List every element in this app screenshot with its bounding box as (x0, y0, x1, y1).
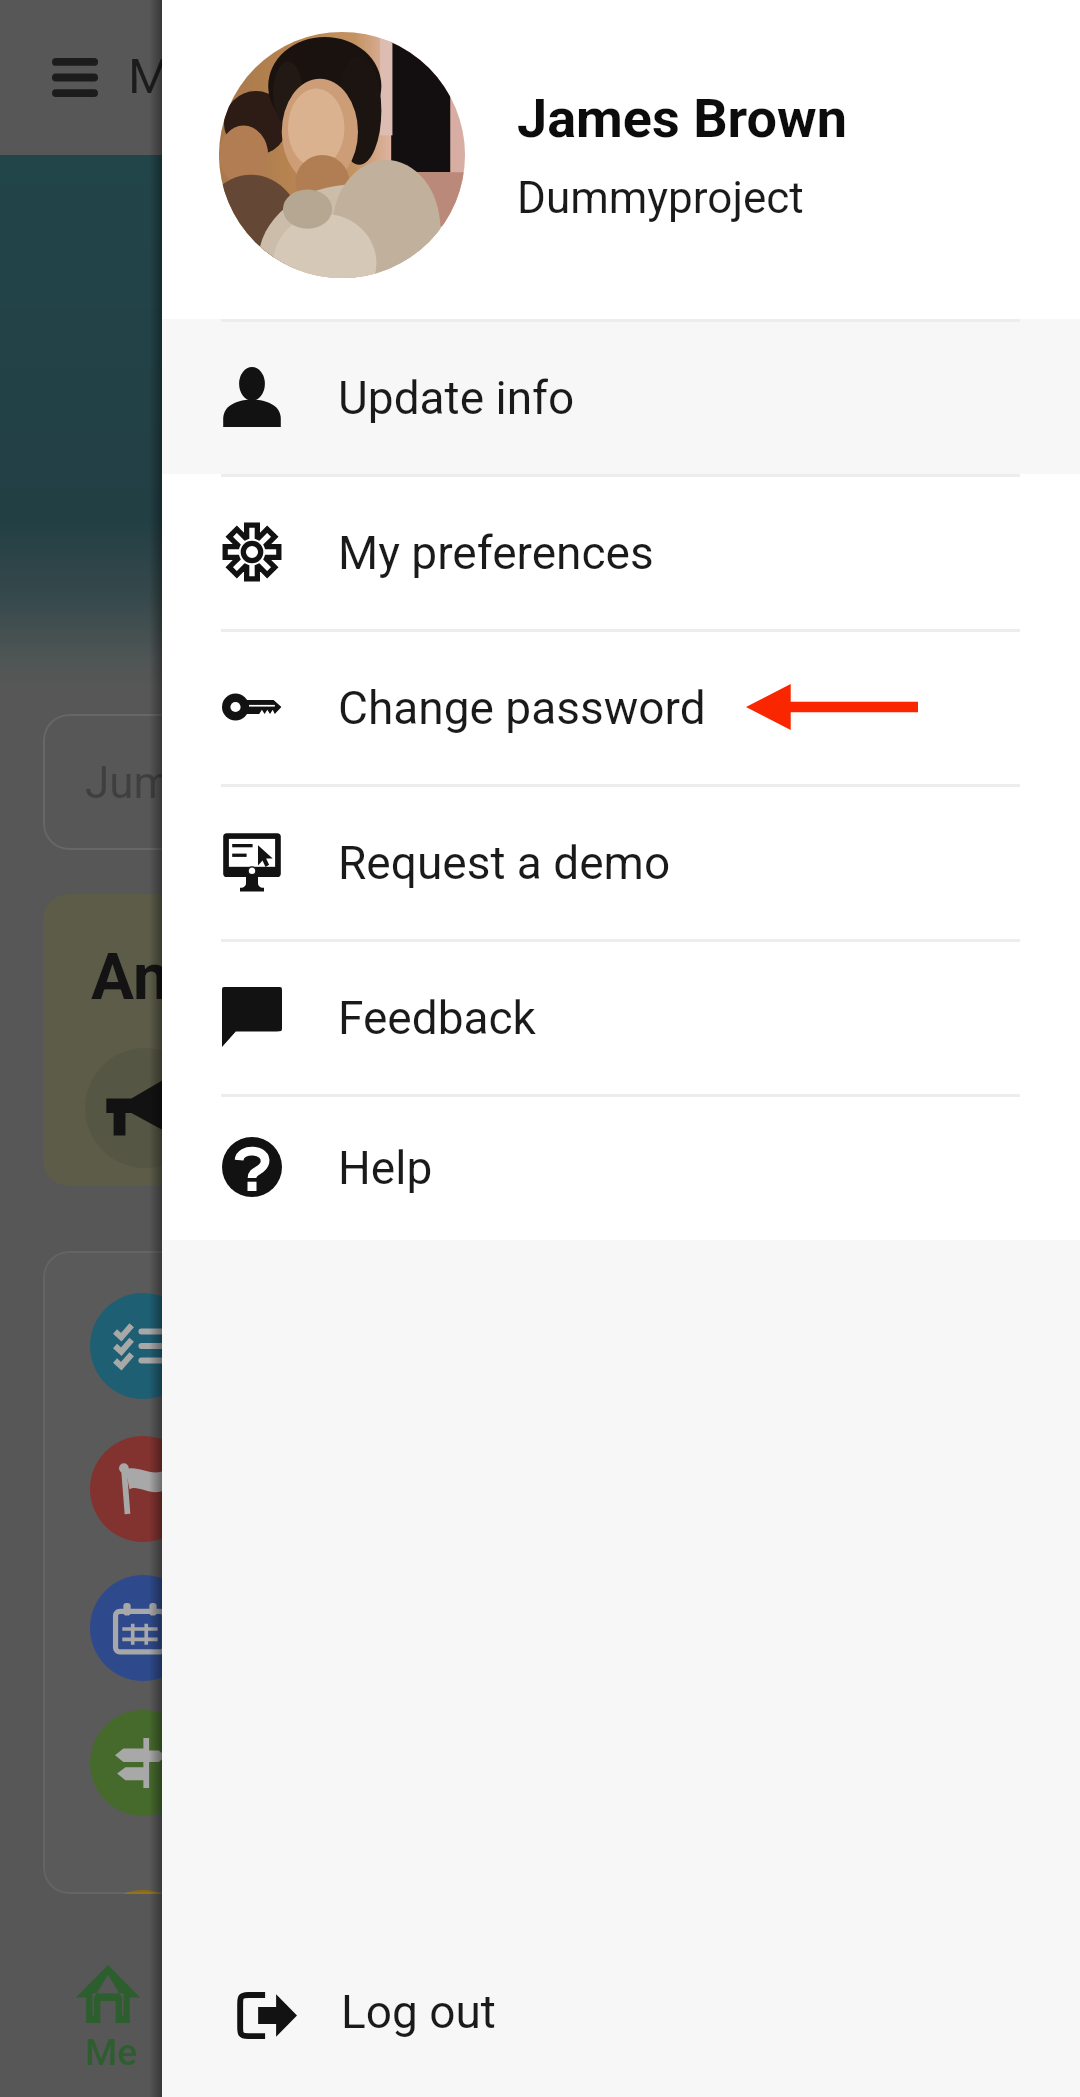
button[interactable]: Ann (43, 894, 563, 1186)
button[interactable] (90, 1575, 196, 1681)
button[interactable]: Open navigation drawer (52, 0, 1080, 155)
staticText: Me (85, 2031, 138, 2074)
staticText: Change password (338, 681, 706, 735)
staticText: Help (338, 1141, 433, 1195)
button[interactable]: My preferences (162, 474, 1080, 629)
button[interactable]: James Brown (162, 0, 1080, 319)
staticText: Dummyproject (517, 172, 804, 224)
staticText: Ann (91, 940, 205, 1015)
staticText: James Brown (517, 87, 847, 150)
staticText: Update info (338, 371, 575, 425)
button[interactable]: Change password (162, 629, 1080, 784)
staticText: My preferences (338, 526, 654, 580)
button[interactable]: Log out (162, 1938, 1080, 2093)
button[interactable]: Update info (162, 319, 1080, 474)
button[interactable]: Me (40, 1930, 180, 2090)
staticText: Request a demo (338, 836, 671, 890)
staticText: Me (128, 48, 197, 105)
staticText: Feedback (338, 991, 536, 1045)
button[interactable]: Feedback (162, 939, 1080, 1094)
button[interactable] (90, 1436, 196, 1542)
button[interactable] (90, 1293, 196, 1399)
other: Open navigation drawer (52, 58, 98, 97)
staticText: Jump to (85, 757, 247, 809)
button[interactable]: Help (162, 1094, 1080, 1240)
button[interactable] (90, 1710, 196, 1816)
button[interactable]: Jump to (43, 714, 563, 850)
staticText: Log out (341, 1985, 496, 2039)
button[interactable]: Request a demo (162, 784, 1080, 939)
